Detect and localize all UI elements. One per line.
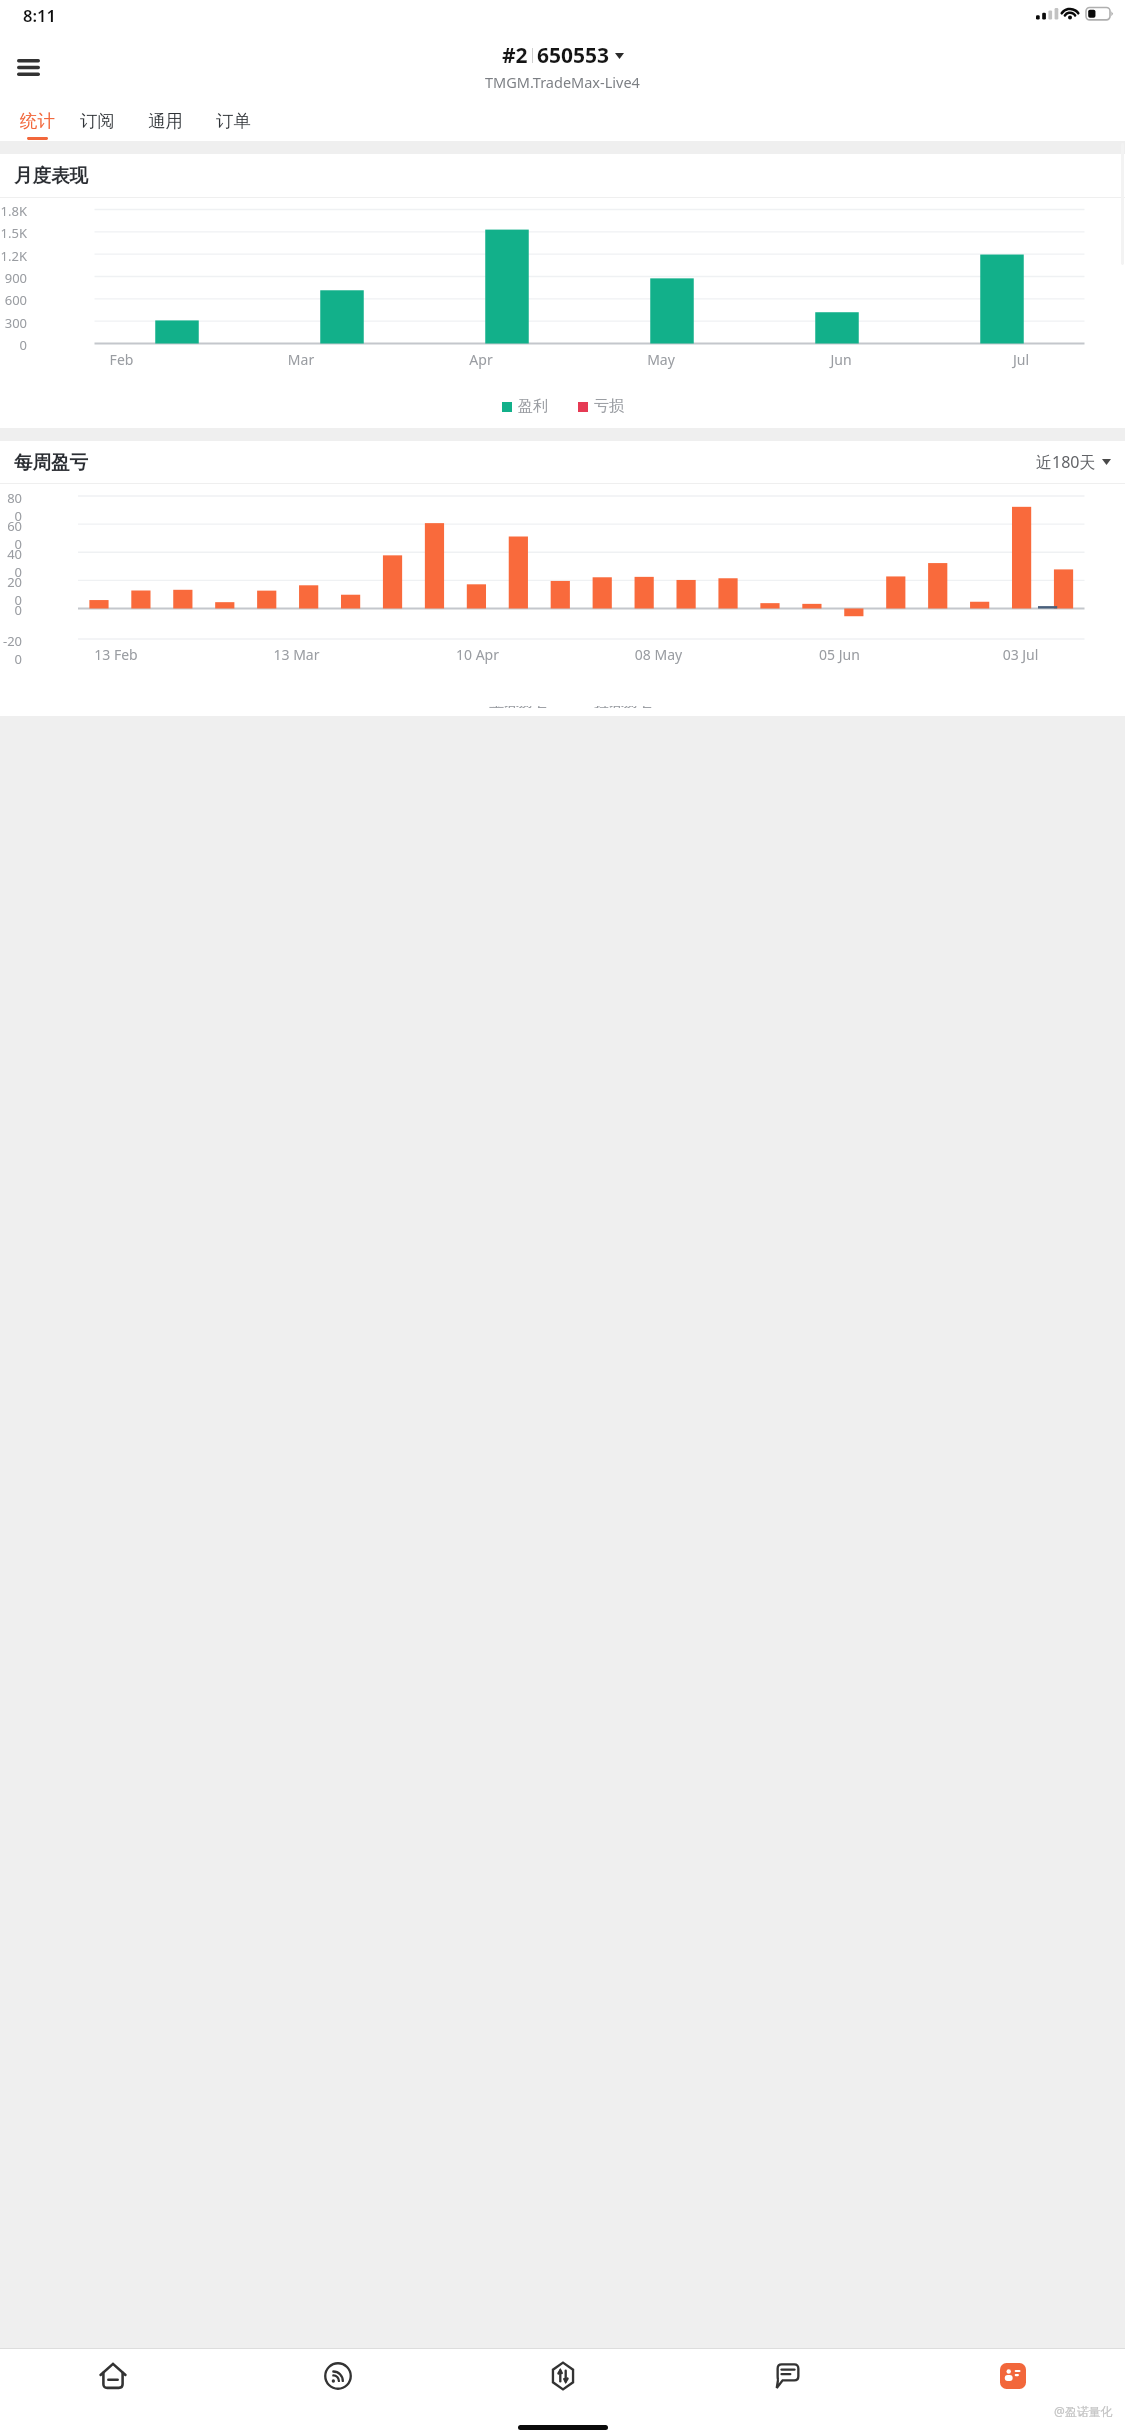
staticText: 月度表现 [14, 164, 88, 187]
staticText: 600 [0, 517, 22, 553]
staticText: 200 [0, 573, 22, 609]
staticText: 亏损 [594, 397, 624, 416]
staticText: May [571, 350, 751, 369]
staticText: 900 [0, 269, 27, 287]
staticText: 400 [0, 545, 22, 581]
staticText: 05 Jun [749, 645, 930, 664]
button[interactable]: 持仓盈亏 [577, 706, 654, 708]
staticText: Feb [32, 350, 211, 369]
staticText: 通用 [148, 110, 183, 132]
staticText: 800 [0, 489, 22, 525]
button[interactable]: 平仓盈亏 [472, 706, 549, 708]
button[interactable]: Signals [225, 2349, 450, 2403]
staticText: 300 [0, 314, 27, 332]
staticText: 1.8K [0, 202, 27, 220]
staticText: Apr [391, 350, 571, 369]
staticText: 平仓盈亏 [489, 706, 549, 708]
staticText: 13 Mar [206, 645, 387, 664]
staticText: 650553 [537, 41, 610, 70]
staticText: 03 Jul [930, 645, 1111, 664]
button[interactable]: 亏损 [578, 397, 624, 416]
staticText: TMGM.TradeMax-Live4 [485, 72, 640, 92]
button[interactable]: 盈利 [502, 397, 548, 416]
staticText: Jul [931, 350, 1111, 369]
button[interactable]: 订单 [199, 105, 267, 141]
button[interactable]: Trade [450, 2349, 675, 2403]
staticText: 订阅 [80, 110, 115, 132]
staticText: 持仓盈亏 [594, 706, 654, 708]
staticText: 600 [0, 291, 27, 309]
staticText: Jun [751, 350, 931, 369]
button[interactable]: 近180天 [1036, 451, 1111, 473]
staticText: 08 May [568, 645, 749, 664]
staticText: 订单 [216, 110, 251, 132]
staticText: -200 [0, 632, 22, 668]
button[interactable]: Account [900, 2349, 1125, 2403]
staticText: 1.2K [0, 247, 27, 265]
button[interactable]: 统计 [11, 105, 63, 141]
button[interactable]: 订阅 [63, 105, 131, 141]
staticText: 统计 [20, 110, 55, 132]
staticText: 0 [0, 336, 27, 354]
staticText: 每周盈亏 [14, 451, 88, 474]
button[interactable]: Messages [675, 2349, 900, 2403]
staticText: @盈诺量化 [1054, 2403, 1113, 2419]
staticText: 近180天 [1036, 451, 1096, 473]
button[interactable]: 通用 [131, 105, 199, 141]
staticText: 1.5K [0, 224, 27, 242]
staticText: 8:11 [23, 4, 56, 26]
staticText: 13 Feb [26, 645, 206, 664]
button[interactable]: Menu [5, 44, 51, 90]
staticText: 10 Apr [387, 645, 568, 664]
staticText: Mar [211, 350, 391, 369]
staticText: 0 [0, 601, 22, 619]
staticText: 盈利 [518, 397, 548, 416]
button[interactable]: Home [0, 2349, 225, 2403]
staticText: #2 [502, 41, 528, 70]
button[interactable]: #2 [485, 41, 640, 92]
